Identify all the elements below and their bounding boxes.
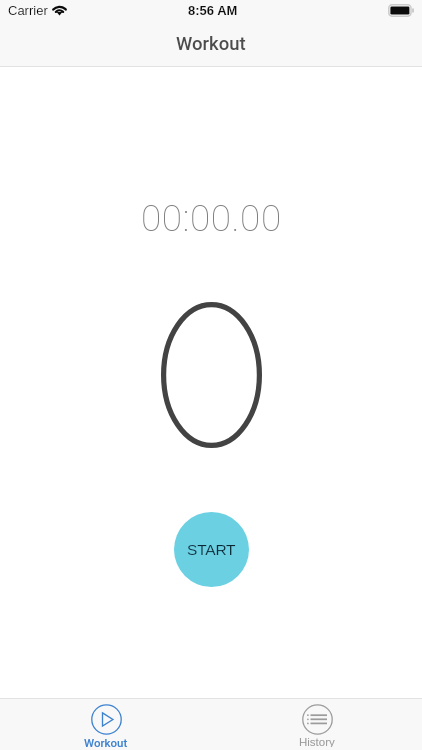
button[interactable]: Start workout timer <box>174 512 249 587</box>
button[interactable]: Workout <box>0 699 211 750</box>
button[interactable]: History <box>211 699 422 750</box>
staticText: Workout <box>84 736 128 747</box>
staticText: History <box>299 736 335 747</box>
staticText: Carrier <box>8 3 48 18</box>
staticText: Workout <box>176 33 246 55</box>
other: Workout <box>54 699 158 750</box>
staticText: 8:56 AM <box>188 3 238 18</box>
other: History <box>269 699 365 750</box>
staticText: 00:00.00 <box>141 197 282 240</box>
staticText: START <box>187 541 236 558</box>
